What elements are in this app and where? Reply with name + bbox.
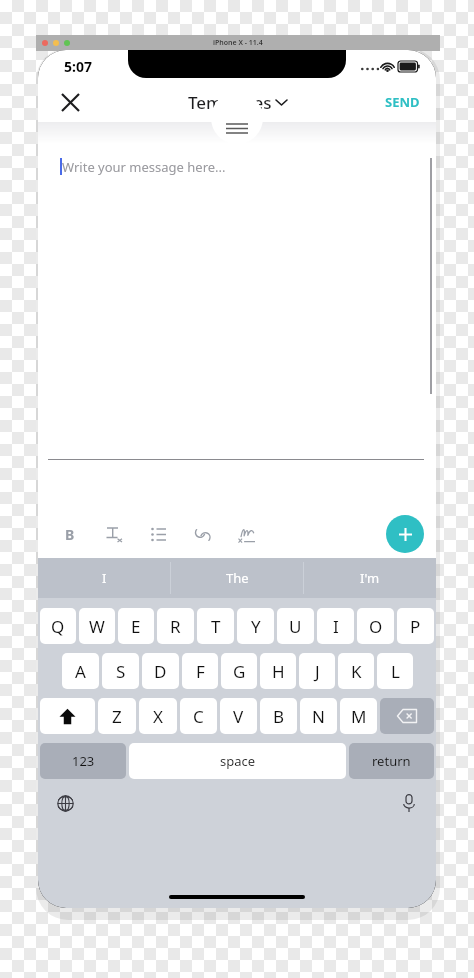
- button[interactable]: K: [338, 653, 374, 689]
- staticText: S: [116, 660, 126, 683]
- button[interactable]: The: [171, 558, 303, 598]
- staticText: T: [211, 615, 221, 638]
- staticText: H: [272, 660, 285, 683]
- button[interactable]: Add: [386, 515, 424, 553]
- button[interactable]: Bulleted list: [144, 520, 172, 548]
- button[interactable]: F: [182, 653, 218, 689]
- button[interactable]: U: [277, 608, 314, 644]
- button[interactable]: Close: [52, 84, 88, 120]
- staticText: Y: [251, 615, 261, 638]
- staticText: E: [131, 615, 141, 638]
- button[interactable]: R: [157, 608, 194, 644]
- staticText: J: [315, 660, 320, 683]
- staticText: The: [226, 569, 249, 587]
- button[interactable]: S: [102, 653, 139, 689]
- button[interactable]: Y: [237, 608, 274, 644]
- button[interactable]: 123: [40, 743, 126, 779]
- staticText: 5:07: [64, 57, 92, 76]
- staticText: R: [170, 615, 181, 638]
- button[interactable]: SEND: [381, 87, 424, 117]
- button[interactable]: O: [357, 608, 394, 644]
- staticText: SEND: [385, 93, 420, 111]
- button[interactable]: Q: [40, 608, 76, 644]
- button[interactable]: space: [129, 743, 346, 779]
- staticText: space: [220, 752, 256, 770]
- button[interactable]: V: [220, 698, 257, 734]
- staticText: Z: [112, 705, 122, 728]
- button[interactable]: Insert link: [188, 520, 216, 548]
- staticText: V: [233, 705, 244, 728]
- staticText: P: [410, 615, 421, 638]
- staticText: I: [333, 615, 339, 638]
- staticText: M: [351, 705, 367, 728]
- button[interactable]: L: [377, 653, 413, 689]
- staticText: B: [273, 705, 285, 728]
- button[interactable]: Change keyboard: [52, 790, 78, 816]
- button[interactable]: I: [38, 558, 170, 598]
- staticText: C: [193, 705, 204, 728]
- button[interactable]: Templates: [188, 91, 287, 114]
- staticText: Write your message here...: [62, 158, 226, 176]
- staticText: D: [154, 660, 167, 683]
- button[interactable]: Backspace: [380, 698, 434, 734]
- button[interactable]: M: [340, 698, 377, 734]
- staticText: U: [289, 615, 302, 638]
- staticText: K: [351, 660, 362, 683]
- button[interactable]: N: [300, 698, 337, 734]
- button[interactable]: Shift: [40, 698, 95, 734]
- button[interactable]: T: [197, 608, 234, 644]
- button[interactable]: Dictate: [396, 790, 422, 816]
- staticText: Q: [51, 615, 65, 638]
- button[interactable]: D: [142, 653, 179, 689]
- button[interactable]: Clear formatting: [100, 520, 128, 548]
- staticText: W: [89, 615, 105, 638]
- button[interactable]: I'm: [304, 558, 436, 598]
- button[interactable]: return: [349, 743, 434, 779]
- button[interactable]: Bold: [56, 520, 84, 548]
- button[interactable]: I: [317, 608, 354, 644]
- button[interactable]: Z: [98, 698, 136, 734]
- staticText: L: [391, 660, 400, 683]
- button[interactable]: W: [79, 608, 115, 644]
- staticText: iPhone X - 11.4: [213, 38, 263, 48]
- button[interactable]: Write your message here...: [38, 144, 436, 510]
- staticText: 123: [72, 752, 95, 770]
- staticText: I'm: [360, 569, 380, 587]
- button[interactable]: B: [260, 698, 297, 734]
- button[interactable]: P: [397, 608, 434, 644]
- button[interactable]: E: [118, 608, 154, 644]
- button[interactable]: Signature: [232, 520, 260, 548]
- button[interactable]: J: [299, 653, 335, 689]
- staticText: return: [372, 752, 411, 770]
- button[interactable]: H: [260, 653, 296, 689]
- button[interactable]: A: [62, 653, 99, 689]
- staticText: I: [102, 569, 107, 587]
- button[interactable]: X: [139, 698, 177, 734]
- staticText: X: [153, 705, 163, 728]
- staticText: Templates: [188, 91, 272, 114]
- button[interactable]: C: [180, 698, 217, 734]
- staticText: N: [312, 705, 325, 728]
- staticText: O: [369, 615, 383, 638]
- staticText: F: [196, 660, 205, 683]
- button[interactable]: G: [221, 653, 257, 689]
- staticText: A: [75, 660, 86, 683]
- staticText: G: [233, 660, 246, 683]
- staticText: B: [65, 525, 75, 544]
